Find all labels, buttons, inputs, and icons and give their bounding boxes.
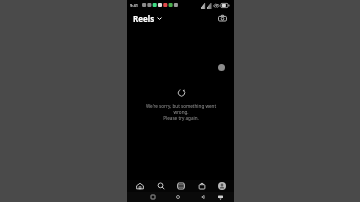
staticText: We're sorry, but something went wrong. P… <box>141 103 221 121</box>
button[interactable]: Reels <box>132 12 163 25</box>
staticText: 9:41 <box>130 3 138 8</box>
button[interactable]: Shop <box>193 180 210 192</box>
button[interactable]: Floating action <box>218 64 225 71</box>
button[interactable]: Back <box>197 192 208 202</box>
button[interactable]: Recents <box>147 192 158 202</box>
staticText: Reels <box>133 13 155 24</box>
button[interactable]: Search <box>152 180 169 192</box>
button[interactable]: Reload <box>174 85 188 99</box>
button[interactable]: Profile <box>213 180 230 192</box>
button[interactable]: Camera <box>216 12 229 25</box>
button[interactable]: Home <box>172 192 183 202</box>
button[interactable]: Hide keyboard <box>215 192 226 202</box>
button[interactable]: Reels <box>172 180 189 192</box>
button[interactable]: Home <box>131 180 148 192</box>
